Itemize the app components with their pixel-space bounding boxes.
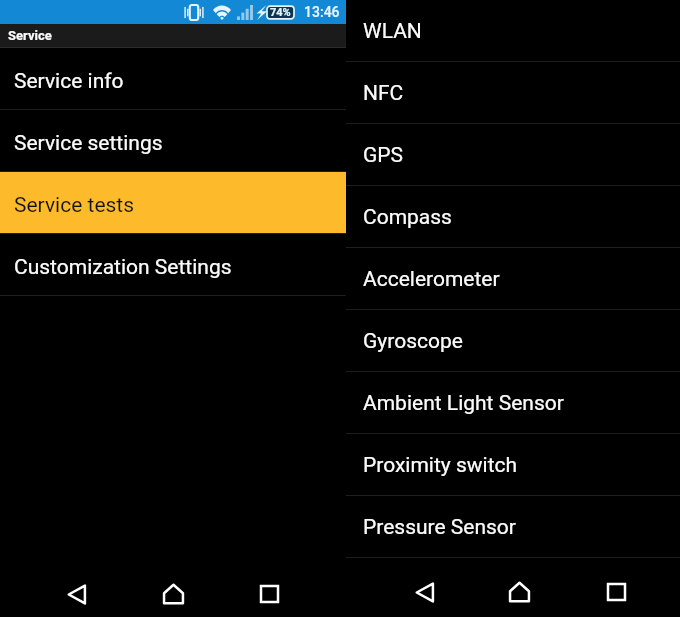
staticText: Compass [363,205,452,230]
button[interactable]: Recents [588,564,644,617]
staticText: Proximity switch [363,453,518,478]
button[interactable]: Pressure Sensor [346,496,680,557]
staticText: Service [8,28,52,43]
button[interactable]: Back [397,564,453,617]
staticText: Accelerometer [363,267,500,292]
button[interactable]: WLAN [346,0,680,61]
button[interactable]: NFC [346,62,680,123]
button[interactable]: Service [0,24,346,47]
staticText: Customization Settings [14,255,232,280]
button[interactable]: Service settings [0,110,346,171]
staticText: 74% [270,6,291,19]
staticText: Ambient Light Sensor [363,391,564,416]
button[interactable]: GPS [346,124,680,185]
button[interactable]: Gyroscope [346,310,680,371]
button[interactable]: Recents [241,566,297,617]
staticText: Pressure Sensor [363,515,516,540]
button[interactable]: Compass [346,186,680,247]
staticText: Service settings [14,131,163,156]
staticText: Service info [14,69,124,94]
staticText: 13:46 [304,4,340,20]
button[interactable]: Accelerometer [346,248,680,309]
staticText: Gyroscope [363,329,463,354]
button[interactable]: Back [49,566,105,617]
button[interactable]: Service info [0,48,346,109]
staticText: NFC [363,81,404,106]
staticText: Service tests [14,193,135,218]
button[interactable]: Service tests [0,172,346,233]
staticText: GPS [363,143,404,168]
button[interactable]: Home [491,564,547,617]
button[interactable]: Proximity switch [346,434,680,495]
button[interactable]: Ambient Light Sensor [346,372,680,433]
button[interactable]: Home [145,566,201,617]
staticText: WLAN [363,19,422,44]
button[interactable]: Customization Settings [0,234,346,295]
